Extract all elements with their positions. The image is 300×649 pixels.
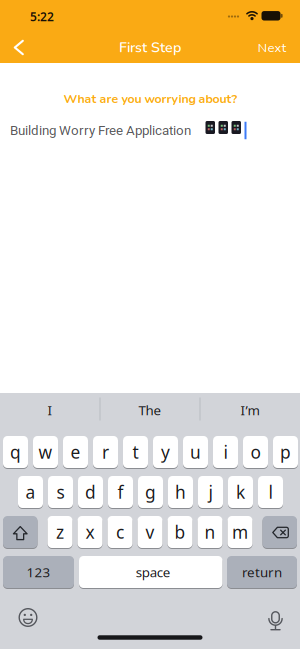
- button[interactable]: m: [227, 515, 252, 549]
- staticText: k: [236, 480, 245, 503]
- staticText: First Step: [119, 38, 181, 57]
- staticText: t: [132, 440, 138, 463]
- button[interactable]: space: [79, 555, 222, 589]
- staticText: return: [242, 563, 282, 581]
- button[interactable]: w: [33, 435, 58, 469]
- staticText: I: [47, 401, 52, 419]
- button[interactable]: Next: [250, 33, 294, 63]
- staticText: u: [190, 440, 201, 463]
- staticText: j: [208, 480, 212, 503]
- staticText: The: [138, 401, 161, 419]
- staticText: What are you worrying about?: [63, 90, 237, 107]
- button[interactable]: y: [153, 435, 178, 469]
- staticText: z: [56, 520, 64, 543]
- staticText: space: [136, 563, 171, 581]
- staticText: c: [116, 520, 124, 543]
- button[interactable]: f: [108, 475, 133, 509]
- staticText: d: [85, 480, 96, 503]
- staticText: h: [175, 480, 186, 503]
- staticText: e: [70, 440, 80, 463]
- staticText: Building Worry Free Application: [10, 123, 191, 138]
- button[interactable]: e: [63, 435, 88, 469]
- staticText: s: [56, 480, 64, 503]
- staticText: i: [223, 440, 227, 463]
- staticText: n: [204, 520, 215, 543]
- button[interactable]: [265, 608, 285, 632]
- button[interactable]: u: [183, 435, 208, 469]
- button[interactable]: I’m: [201, 393, 299, 427]
- staticText: y: [161, 440, 170, 463]
- staticText: o: [250, 440, 260, 463]
- button[interactable]: x: [77, 515, 102, 549]
- button[interactable]: h: [168, 475, 193, 509]
- staticText: g: [145, 480, 156, 503]
- button[interactable]: o: [243, 435, 268, 469]
- staticText: b: [174, 520, 185, 543]
- button[interactable]: t: [123, 435, 148, 469]
- staticText: r: [102, 440, 109, 463]
- button[interactable]: [262, 515, 297, 549]
- button[interactable]: The: [101, 393, 199, 427]
- staticText: a: [25, 480, 35, 503]
- button[interactable]: Building Worry Free Application: [0, 118, 300, 142]
- staticText: m: [232, 520, 248, 543]
- button[interactable]: p: [273, 435, 298, 469]
- button[interactable]: v: [137, 515, 162, 549]
- button[interactable]: j: [198, 475, 223, 509]
- button[interactable]: l: [258, 475, 283, 509]
- button[interactable]: k: [228, 475, 253, 509]
- staticText: p: [280, 440, 291, 463]
- button[interactable]: 123: [3, 555, 74, 589]
- button[interactable]: I: [1, 393, 99, 427]
- staticText: w: [38, 440, 52, 463]
- staticText: x: [85, 520, 94, 543]
- button[interactable]: z: [47, 515, 72, 549]
- button[interactable]: s: [48, 475, 73, 509]
- button[interactable]: [3, 515, 37, 549]
- button[interactable]: i: [213, 435, 238, 469]
- button[interactable]: a: [18, 475, 43, 509]
- staticText: I’m: [240, 401, 259, 419]
- button[interactable]: return: [227, 555, 297, 589]
- button[interactable]: r: [93, 435, 118, 469]
- staticText: l: [268, 480, 272, 503]
- button[interactable]: [17, 606, 39, 628]
- button[interactable]: g: [138, 475, 163, 509]
- button[interactable]: [4, 32, 30, 62]
- button[interactable]: b: [167, 515, 192, 549]
- button[interactable]: c: [107, 515, 132, 549]
- button[interactable]: n: [197, 515, 222, 549]
- staticText: v: [145, 520, 154, 543]
- staticText: Next: [257, 39, 286, 57]
- button[interactable]: q: [3, 435, 28, 469]
- staticText: f: [117, 480, 123, 503]
- staticText: q: [10, 440, 21, 463]
- button[interactable]: d: [78, 475, 103, 509]
- staticText: 5:22: [30, 8, 54, 24]
- staticText: 123: [26, 563, 50, 581]
